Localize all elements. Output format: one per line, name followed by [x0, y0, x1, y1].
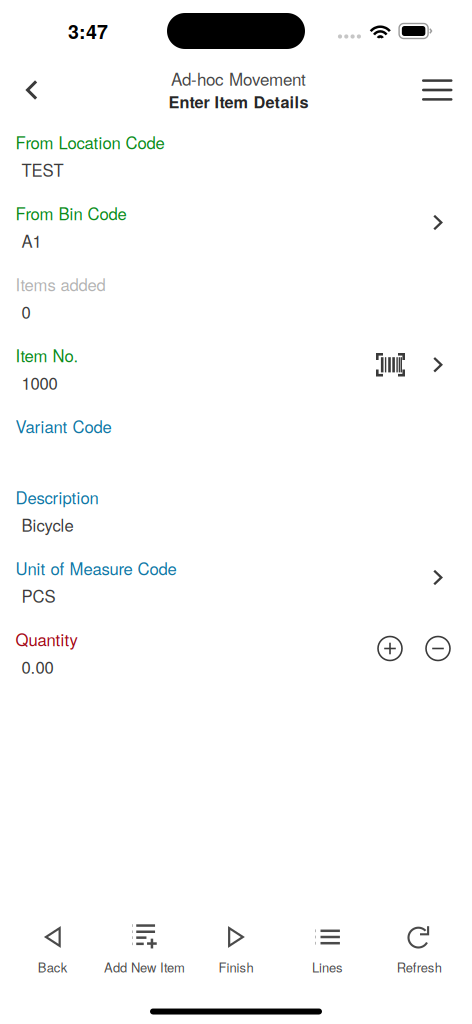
button[interactable]: Add New Item — [99, 922, 190, 978]
staticText: Variant Code — [15, 414, 111, 438]
staticText: Item No. — [15, 343, 78, 367]
staticText: Finish — [218, 958, 253, 976]
staticText: Unit of Measure Code — [15, 556, 176, 580]
staticText: Ad-hoc Movement — [171, 66, 306, 91]
staticText: From Location Code — [15, 130, 164, 154]
staticText: Add New Item — [104, 958, 185, 976]
staticText: Back — [38, 958, 68, 976]
staticText: Bicycle — [21, 512, 73, 536]
button[interactable]: Finish — [190, 922, 282, 978]
staticText: Enter Item Details — [168, 90, 308, 113]
button[interactable]: Refresh — [373, 922, 465, 978]
button[interactable]: Lines — [282, 922, 373, 978]
staticText: 0.00 — [21, 654, 53, 678]
button[interactable]: Back — [0, 66, 56, 114]
staticText: 3:47 — [68, 17, 108, 45]
staticText: 0 — [21, 299, 30, 323]
staticText: Quantity — [15, 627, 77, 651]
button[interactable]: Menu — [404, 65, 472, 115]
button[interactable]: Unit of Measure Code — [0, 548, 472, 619]
staticText: 1000 — [21, 370, 57, 394]
staticText: A1 — [21, 228, 41, 252]
staticText: From Bin Code — [15, 201, 126, 225]
button[interactable]: Back — [7, 922, 99, 978]
staticText: PCS — [21, 583, 55, 607]
staticText: Refresh — [397, 958, 442, 976]
button[interactable]: Item No. — [0, 335, 472, 406]
staticText: TEST — [21, 157, 63, 181]
staticText: Lines — [312, 958, 343, 976]
button[interactable]: From Bin Code — [0, 193, 472, 264]
staticText: Description — [15, 485, 98, 509]
staticText: Items added — [15, 272, 105, 296]
